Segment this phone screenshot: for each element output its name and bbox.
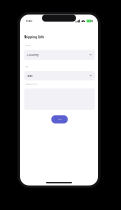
button[interactable]: State xyxy=(24,71,95,80)
staticText: Shipping Info xyxy=(24,35,44,39)
button[interactable]: Country xyxy=(24,50,95,60)
staticText: Save xyxy=(57,118,61,120)
staticText: 9:41 xyxy=(26,19,33,23)
staticText: State xyxy=(25,66,28,68)
staticText: Country xyxy=(27,53,38,57)
staticText: Shipping address xyxy=(25,83,38,85)
staticText: State xyxy=(27,74,33,77)
button[interactable]: Save xyxy=(51,115,68,123)
staticText: Country xyxy=(25,44,31,46)
